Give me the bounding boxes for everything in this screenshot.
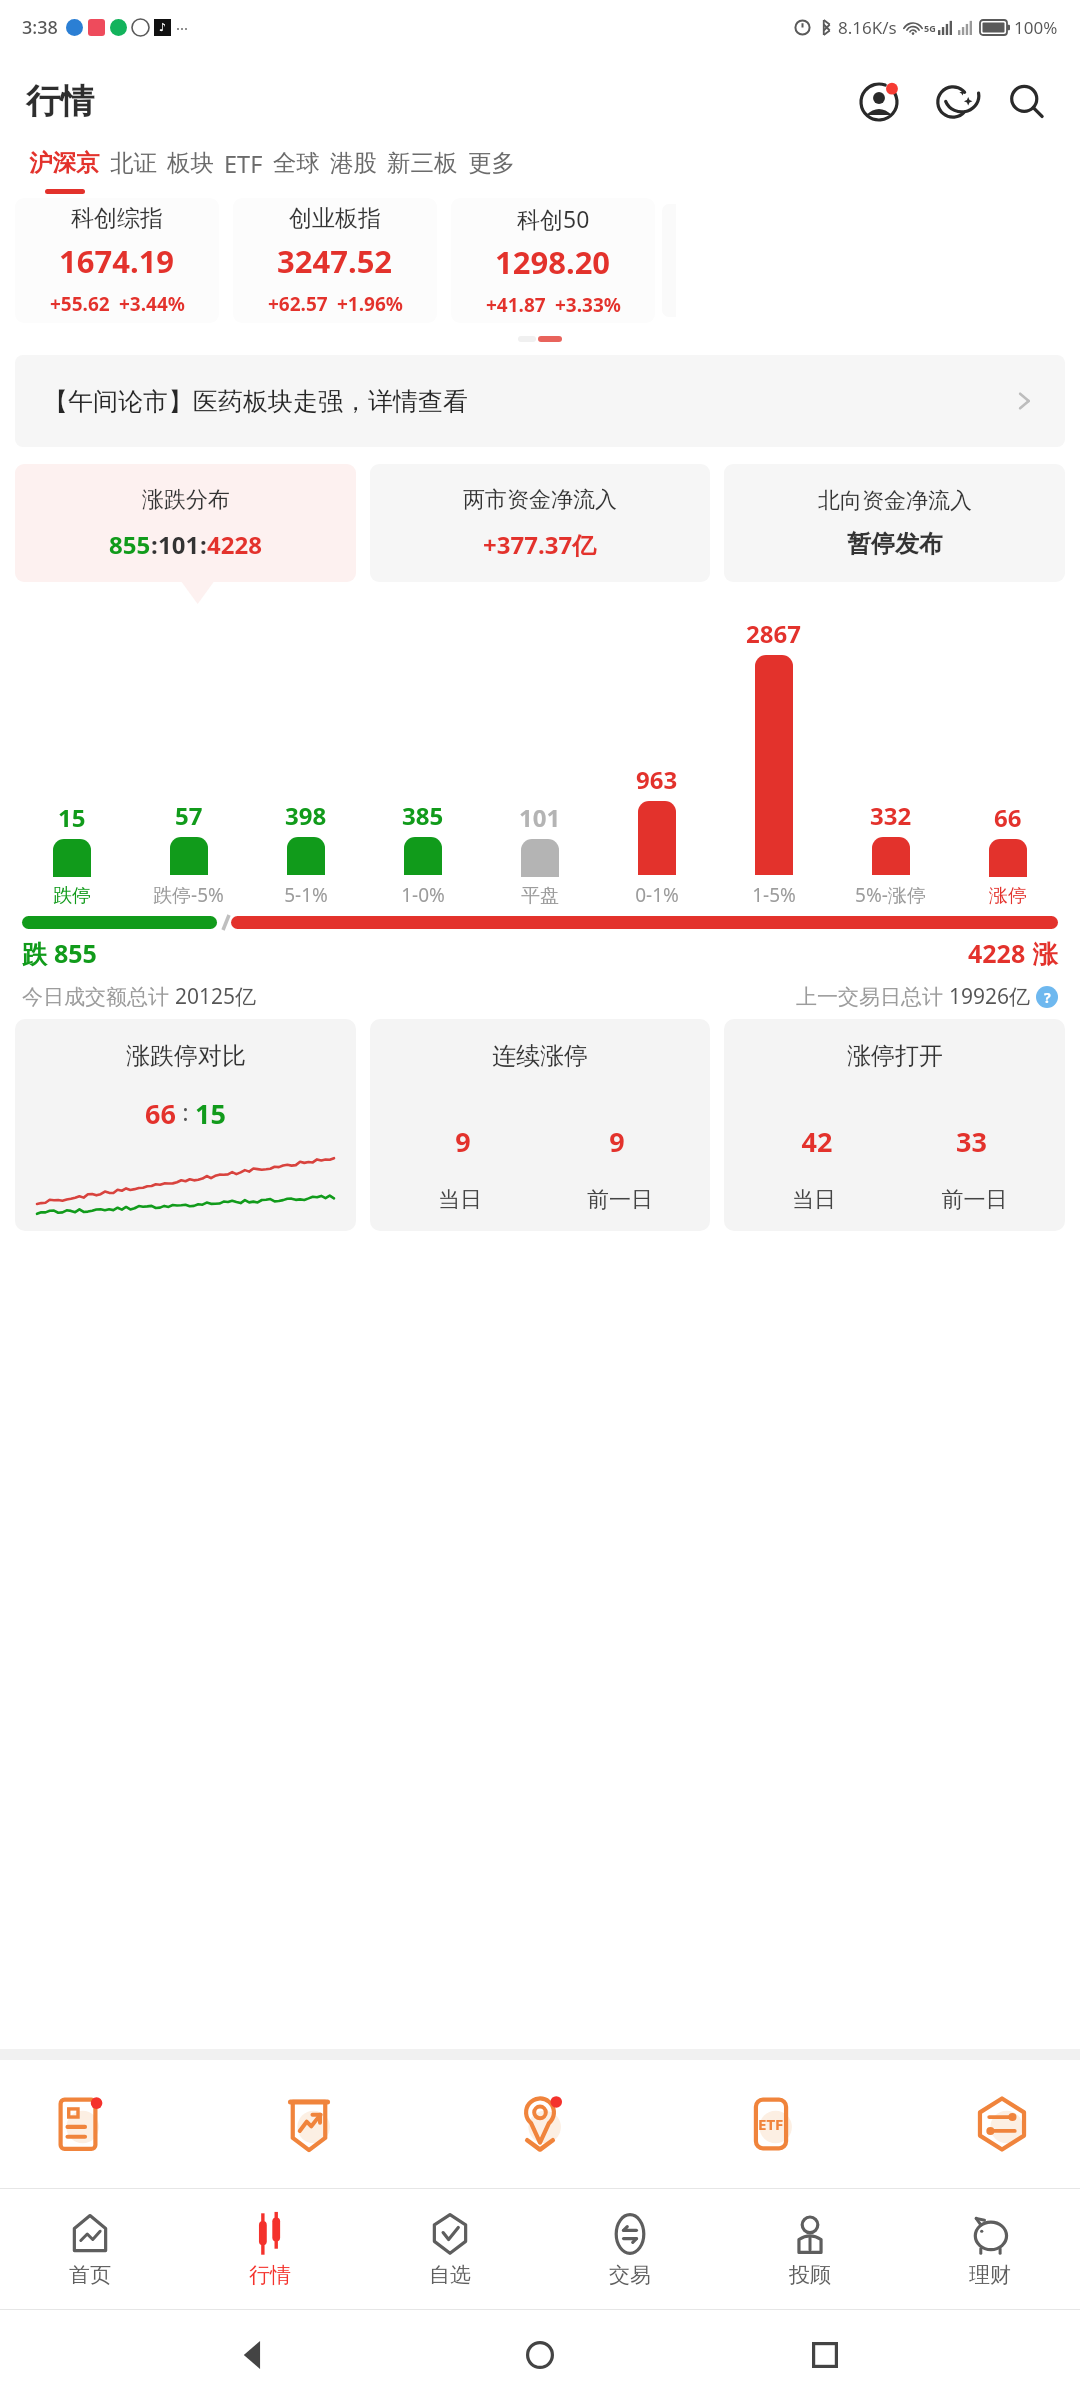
button[interactable]: 连续涨停 — [370, 1019, 710, 1231]
button[interactable]: 两市资金净流入 — [370, 464, 710, 582]
staticText: 101 — [519, 801, 561, 834]
button[interactable]: 新三板 — [382, 148, 463, 189]
button[interactable]: Back — [225, 2325, 285, 2385]
staticText: 9 — [540, 1123, 694, 1160]
button[interactable]: 更多 — [463, 148, 520, 189]
button[interactable]: 首页 — [0, 2189, 180, 2309]
staticText: 首页 — [69, 2262, 111, 2288]
staticText: 平盘 — [521, 884, 559, 908]
staticText: +62.57 — [268, 291, 328, 317]
button[interactable]: 全球 — [268, 148, 325, 189]
button[interactable]: 行情 — [180, 2189, 360, 2309]
staticText: 385 — [402, 799, 444, 832]
button[interactable]: 创业板指 — [233, 198, 437, 323]
staticText: +1.96% — [337, 291, 403, 317]
staticText: 创业板指 — [289, 204, 381, 233]
staticText: 涨跌停对比 — [126, 1041, 246, 1071]
staticText: 5G — [924, 22, 936, 34]
staticText: 【午间论市】医药板块走强，详情查看 — [43, 386, 468, 417]
staticText: 跌停 — [53, 884, 91, 908]
staticText: 涨停 — [989, 884, 1027, 908]
button[interactable]: 板块 — [162, 148, 219, 189]
staticText: 2867 — [746, 617, 801, 650]
staticText: 5-1% — [284, 882, 328, 908]
button[interactable]: Radar — [492, 2076, 588, 2172]
staticText: 1298.20 — [495, 241, 611, 283]
staticText: 跌 — [22, 936, 54, 970]
staticText: 57 — [175, 799, 203, 832]
button[interactable]: News — [30, 2076, 126, 2172]
button[interactable]: 【午间论市】医药板块走强，详情查看 — [15, 355, 1065, 447]
staticText: 9 — [386, 1123, 540, 1160]
staticText: 332 — [870, 799, 912, 832]
staticText: 1-5% — [752, 882, 796, 908]
button[interactable]: 科创50 — [451, 198, 655, 323]
staticText: +3.33% — [555, 292, 621, 318]
button[interactable]: 理财 — [900, 2189, 1080, 2309]
staticText: 4228 — [207, 528, 262, 561]
button[interactable]: ETF — [723, 2076, 819, 2172]
button[interactable]: Search — [998, 73, 1056, 131]
staticText: 19926亿 — [949, 982, 1031, 1011]
staticText: ETF — [758, 2114, 784, 2134]
staticText: 连续涨停 — [492, 1041, 588, 1071]
button[interactable]: Recents — [795, 2325, 855, 2385]
button[interactable]: 投顾 — [720, 2189, 900, 2309]
staticText: 科创50 — [517, 203, 590, 234]
staticText: 暂停发布 — [847, 529, 943, 559]
button[interactable]: 自选 — [360, 2189, 540, 2309]
staticText: 北证 — [110, 148, 157, 178]
button[interactable]: Home — [510, 2325, 570, 2385]
staticText: 理财 — [969, 2262, 1011, 2288]
staticText: 港股 — [330, 148, 377, 178]
staticText: 北向资金净流入 — [818, 487, 972, 515]
staticText: 当日 — [380, 1186, 540, 1214]
button[interactable]: 沪深京 — [24, 148, 105, 194]
staticText: 3:38 — [22, 15, 58, 40]
button[interactable]: 科创综指 — [15, 198, 219, 323]
staticText: 自选 — [429, 2262, 471, 2288]
staticText: 398 — [285, 799, 327, 832]
staticText: ··· — [176, 18, 189, 38]
button[interactable]: Info — [1036, 986, 1058, 1008]
staticText: 涨停打开 — [847, 1041, 943, 1071]
staticText: 前一日 — [540, 1186, 700, 1214]
button[interactable]: ETF — [219, 148, 268, 191]
staticText: 8.16K/s — [838, 16, 897, 39]
button[interactable]: 涨跌分布 — [15, 464, 356, 582]
staticText: 66 — [994, 801, 1022, 834]
staticText: 1-0% — [401, 882, 445, 908]
button[interactable]: Trends — [261, 2076, 357, 2172]
staticText: 上一交易日总计 — [796, 982, 949, 1011]
staticText: 当日 — [734, 1186, 894, 1214]
staticText: 963 — [636, 763, 678, 796]
staticText: 前一日 — [894, 1186, 1055, 1214]
staticText: 涨 — [1026, 936, 1058, 970]
staticText: 66 — [145, 1095, 176, 1132]
staticText: 行情 — [249, 2262, 291, 2288]
staticText: 20125亿 — [175, 982, 257, 1011]
button[interactable]: Profile — [850, 73, 908, 131]
button[interactable]: 港股 — [325, 148, 382, 189]
staticText: 沪深京 — [29, 148, 100, 178]
staticText: 今日成交额总计 — [22, 982, 175, 1011]
button[interactable]: 北向资金净流入 — [724, 464, 1065, 582]
staticText: 0-1% — [635, 882, 679, 908]
button[interactable]: 北证 — [105, 148, 162, 189]
staticText: : — [200, 528, 207, 561]
staticText: 更多 — [468, 148, 515, 178]
staticText: 全球 — [273, 148, 320, 178]
button[interactable]: 交易 — [540, 2189, 720, 2309]
staticText: 4228 — [968, 936, 1026, 970]
staticText: 33 — [894, 1123, 1049, 1160]
button[interactable]: Tools — [954, 2076, 1050, 2172]
staticText: 855 — [109, 528, 151, 561]
staticText: 两市资金净流入 — [463, 486, 617, 514]
staticText: ? — [1044, 988, 1051, 1007]
button[interactable]: 涨跌停对比 — [15, 1019, 356, 1231]
button[interactable]: 涨停打开 — [724, 1019, 1065, 1231]
staticText: 板块 — [167, 148, 214, 178]
staticText: ♪ — [159, 21, 167, 34]
staticText: 5%-涨停 — [855, 882, 926, 908]
button[interactable]: Night mode — [924, 73, 982, 131]
